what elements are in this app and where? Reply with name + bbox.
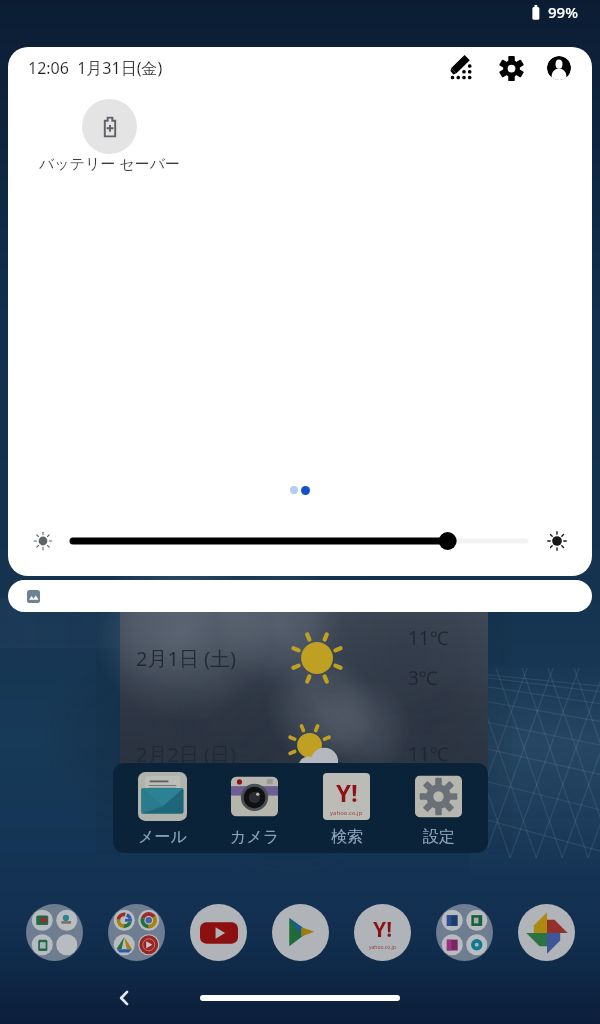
button[interactable]: Documents folder: [26, 904, 83, 961]
staticText: 検索: [331, 827, 363, 847]
button[interactable]: Y!: [304, 772, 389, 847]
staticText: 11℃: [408, 625, 449, 651]
staticText: 設定: [423, 827, 455, 847]
button[interactable]: Google folder: [108, 904, 165, 961]
button[interactable]: User account: [540, 49, 578, 87]
button[interactable]: Back: [108, 982, 140, 1014]
button[interactable]: Yahoo: [354, 904, 411, 961]
button[interactable]: Microsoft folder: [436, 904, 493, 961]
staticText: 2月2日 (日): [136, 741, 237, 768]
button[interactable]: Play Store: [272, 904, 329, 961]
staticText: yahoo.co.jp: [369, 944, 396, 951]
button[interactable]: YouTube: [190, 904, 247, 961]
staticText: 3℃: [408, 665, 438, 691]
staticText: 12:06 1月31日(金): [28, 57, 163, 79]
button[interactable]: バッテリー セーバー: [39, 99, 189, 174]
button[interactable]: Photos: [518, 904, 575, 961]
button[interactable]: メール: [120, 772, 205, 847]
button[interactable]: 設定: [396, 772, 481, 847]
button[interactable]: Settings: [492, 49, 530, 87]
staticText: バッテリー セーバー: [39, 153, 181, 173]
button[interactable]: [8, 580, 592, 612]
staticText: yahoo.co.jp: [330, 809, 363, 817]
staticText: 99%: [548, 2, 578, 22]
staticText: カメラ: [230, 827, 280, 847]
staticText: Y!: [336, 776, 358, 809]
staticText: Y!: [373, 915, 393, 944]
button[interactable]: Home: [200, 995, 400, 1001]
button[interactable]: Edit tiles: [444, 49, 482, 87]
button[interactable]: 2月1日 (土): [120, 610, 488, 810]
staticText: 11℃: [408, 741, 449, 767]
staticText: 2月1日 (土): [136, 645, 237, 672]
button[interactable]: カメラ: [212, 772, 297, 847]
staticText: メール: [138, 827, 187, 847]
